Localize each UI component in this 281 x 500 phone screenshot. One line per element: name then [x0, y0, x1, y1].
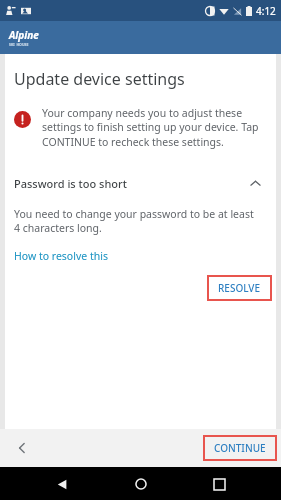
button[interactable]: Back — [46, 468, 78, 500]
staticText: Your company needs you to adjust these s… — [42, 106, 262, 149]
button[interactable]: Recent apps — [203, 468, 235, 500]
staticText: CONTINUE — [214, 441, 266, 455]
button[interactable]: RESOLVE — [207, 275, 272, 301]
staticText: RESOLVE — [218, 281, 261, 295]
staticText: Password is too short — [14, 176, 245, 191]
button[interactable]: CONTINUE — [203, 435, 277, 461]
staticText: Alpine — [9, 28, 39, 42]
staticText: Update device settings — [14, 68, 185, 90]
button[interactable]: How to resolve this — [5, 248, 117, 264]
button[interactable]: Password is too short — [5, 171, 276, 195]
staticText: How to resolve this — [14, 249, 108, 263]
staticText: SKI HOUSE — [9, 42, 29, 47]
button[interactable]: Back — [8, 434, 36, 462]
staticText: 4:12 — [256, 4, 276, 18]
button[interactable]: Home — [125, 468, 157, 500]
other: Collapse — [245, 173, 265, 193]
staticText: You need to change your password to be a… — [14, 207, 254, 235]
